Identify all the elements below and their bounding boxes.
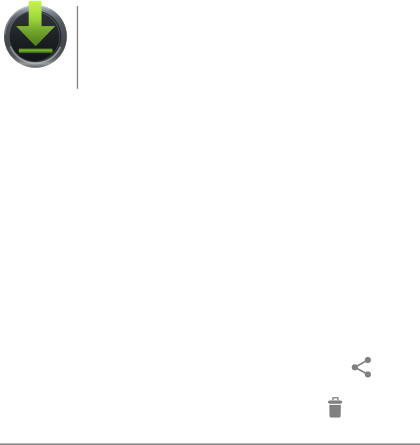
button[interactable]: Share: [348, 353, 372, 379]
button[interactable]: Delete: [327, 396, 343, 418]
